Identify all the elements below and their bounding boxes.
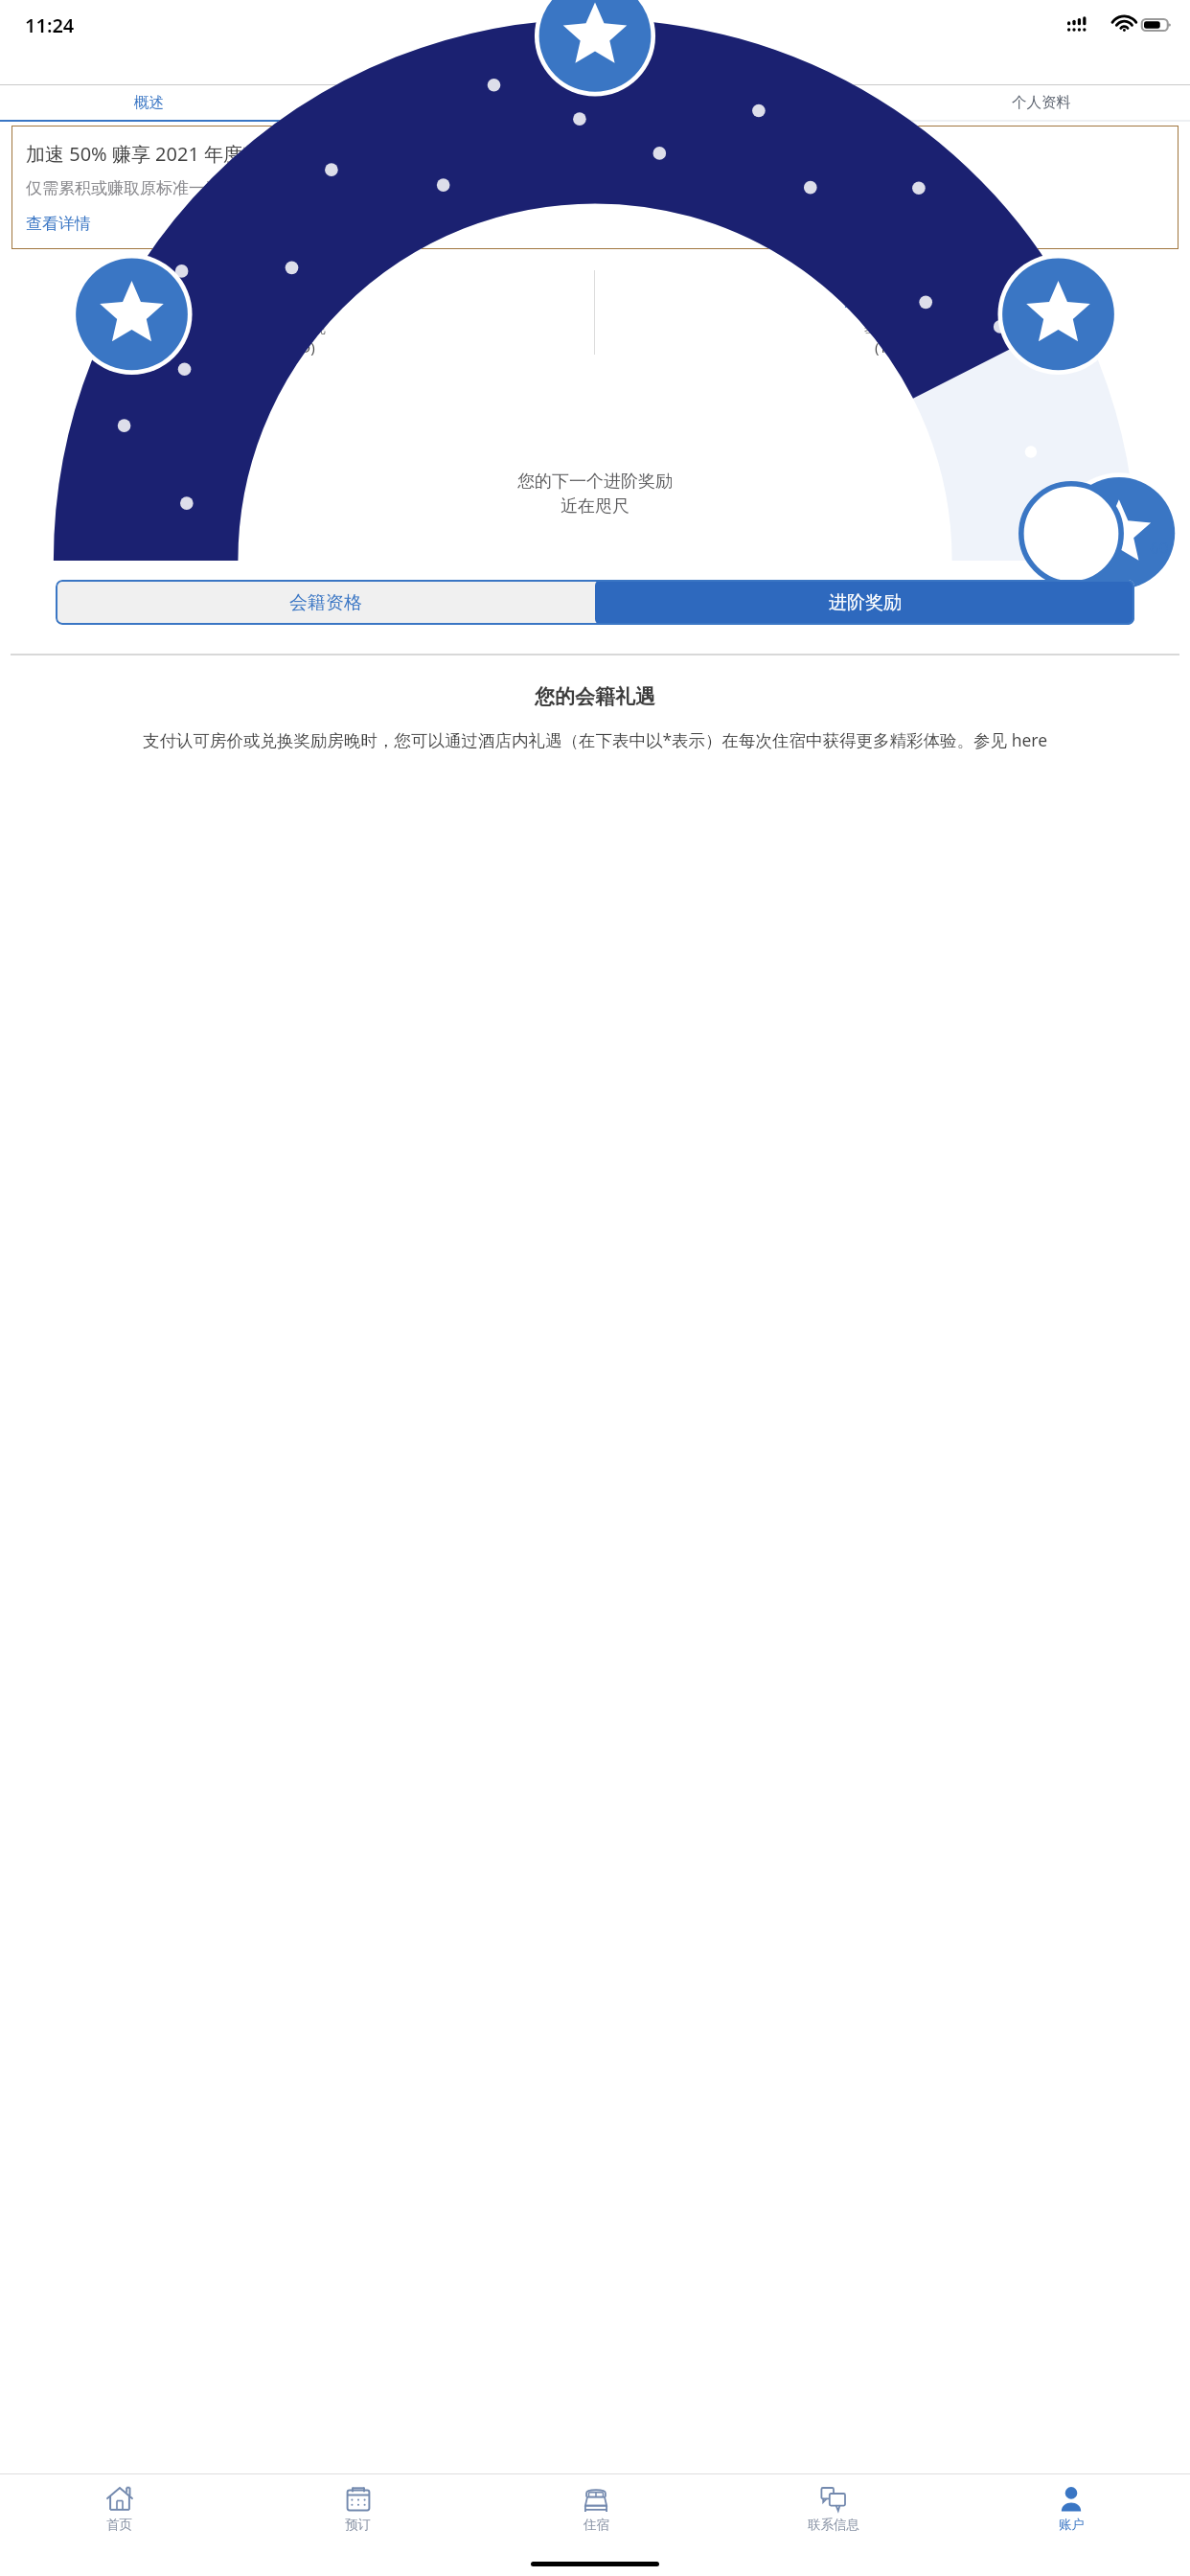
staticText: 账户: [573, 52, 617, 80]
staticText: 11:24: [25, 12, 75, 38]
button[interactable]: 联系信息: [715, 2474, 952, 2543]
staticText: 51: [276, 268, 318, 318]
button[interactable]: 住宿: [477, 2474, 715, 2543]
staticText: 会籍资格: [289, 591, 362, 614]
staticText: 奖励: [728, 93, 758, 112]
staticText: (YTD): [280, 337, 315, 356]
staticText: 基本积分: [864, 319, 922, 337]
staticText: 预订: [345, 2517, 371, 2533]
staticText: 联系信息: [808, 2517, 859, 2533]
button[interactable]: 以往 活动: [297, 85, 594, 120]
staticText: 仅需累积或赚取原标准一半的会籍认可房晚或基本积分，即可获享或保留尊贵会籍。: [26, 178, 629, 198]
button[interactable]: 加速 50% 赚享 2021 年度尊贵会籍: [11, 126, 1179, 249]
staticText: 加速 50% 赚享 2021 年度尊贵会籍: [26, 141, 320, 167]
staticText: 您的会籍礼遇: [0, 684, 1190, 709]
staticText: 概述: [134, 93, 164, 112]
button[interactable]: 个人资料: [892, 85, 1190, 120]
staticText: 认可房晚: [268, 319, 326, 337]
button[interactable]: 进阶奖励: [595, 580, 1134, 625]
staticText: 进阶奖励: [829, 591, 902, 614]
button[interactable]: 会籍资格: [56, 580, 595, 625]
staticText: 15,677: [835, 268, 950, 318]
staticText: 支付认可房价或兑换奖励房晚时，您可以通过酒店内礼遇（在下表中以*表示）在每次住宿…: [17, 728, 1173, 751]
button[interactable]: 奖励: [594, 85, 892, 120]
staticText: 住宿: [584, 2517, 609, 2533]
button[interactable]: 账户: [952, 2474, 1190, 2543]
staticText: 首页: [106, 2517, 132, 2533]
button[interactable]: 预订: [239, 2474, 477, 2543]
staticText: 个人资料: [1012, 93, 1071, 112]
staticText: 您的下一个进阶奖励 近在咫尺: [517, 471, 673, 517]
button[interactable]: 查看详情: [26, 214, 91, 234]
staticText: (YTD): [875, 337, 910, 356]
button[interactable]: 概述: [0, 85, 297, 120]
button[interactable]: 首页: [0, 2474, 239, 2543]
staticText: 账户: [1059, 2517, 1085, 2533]
